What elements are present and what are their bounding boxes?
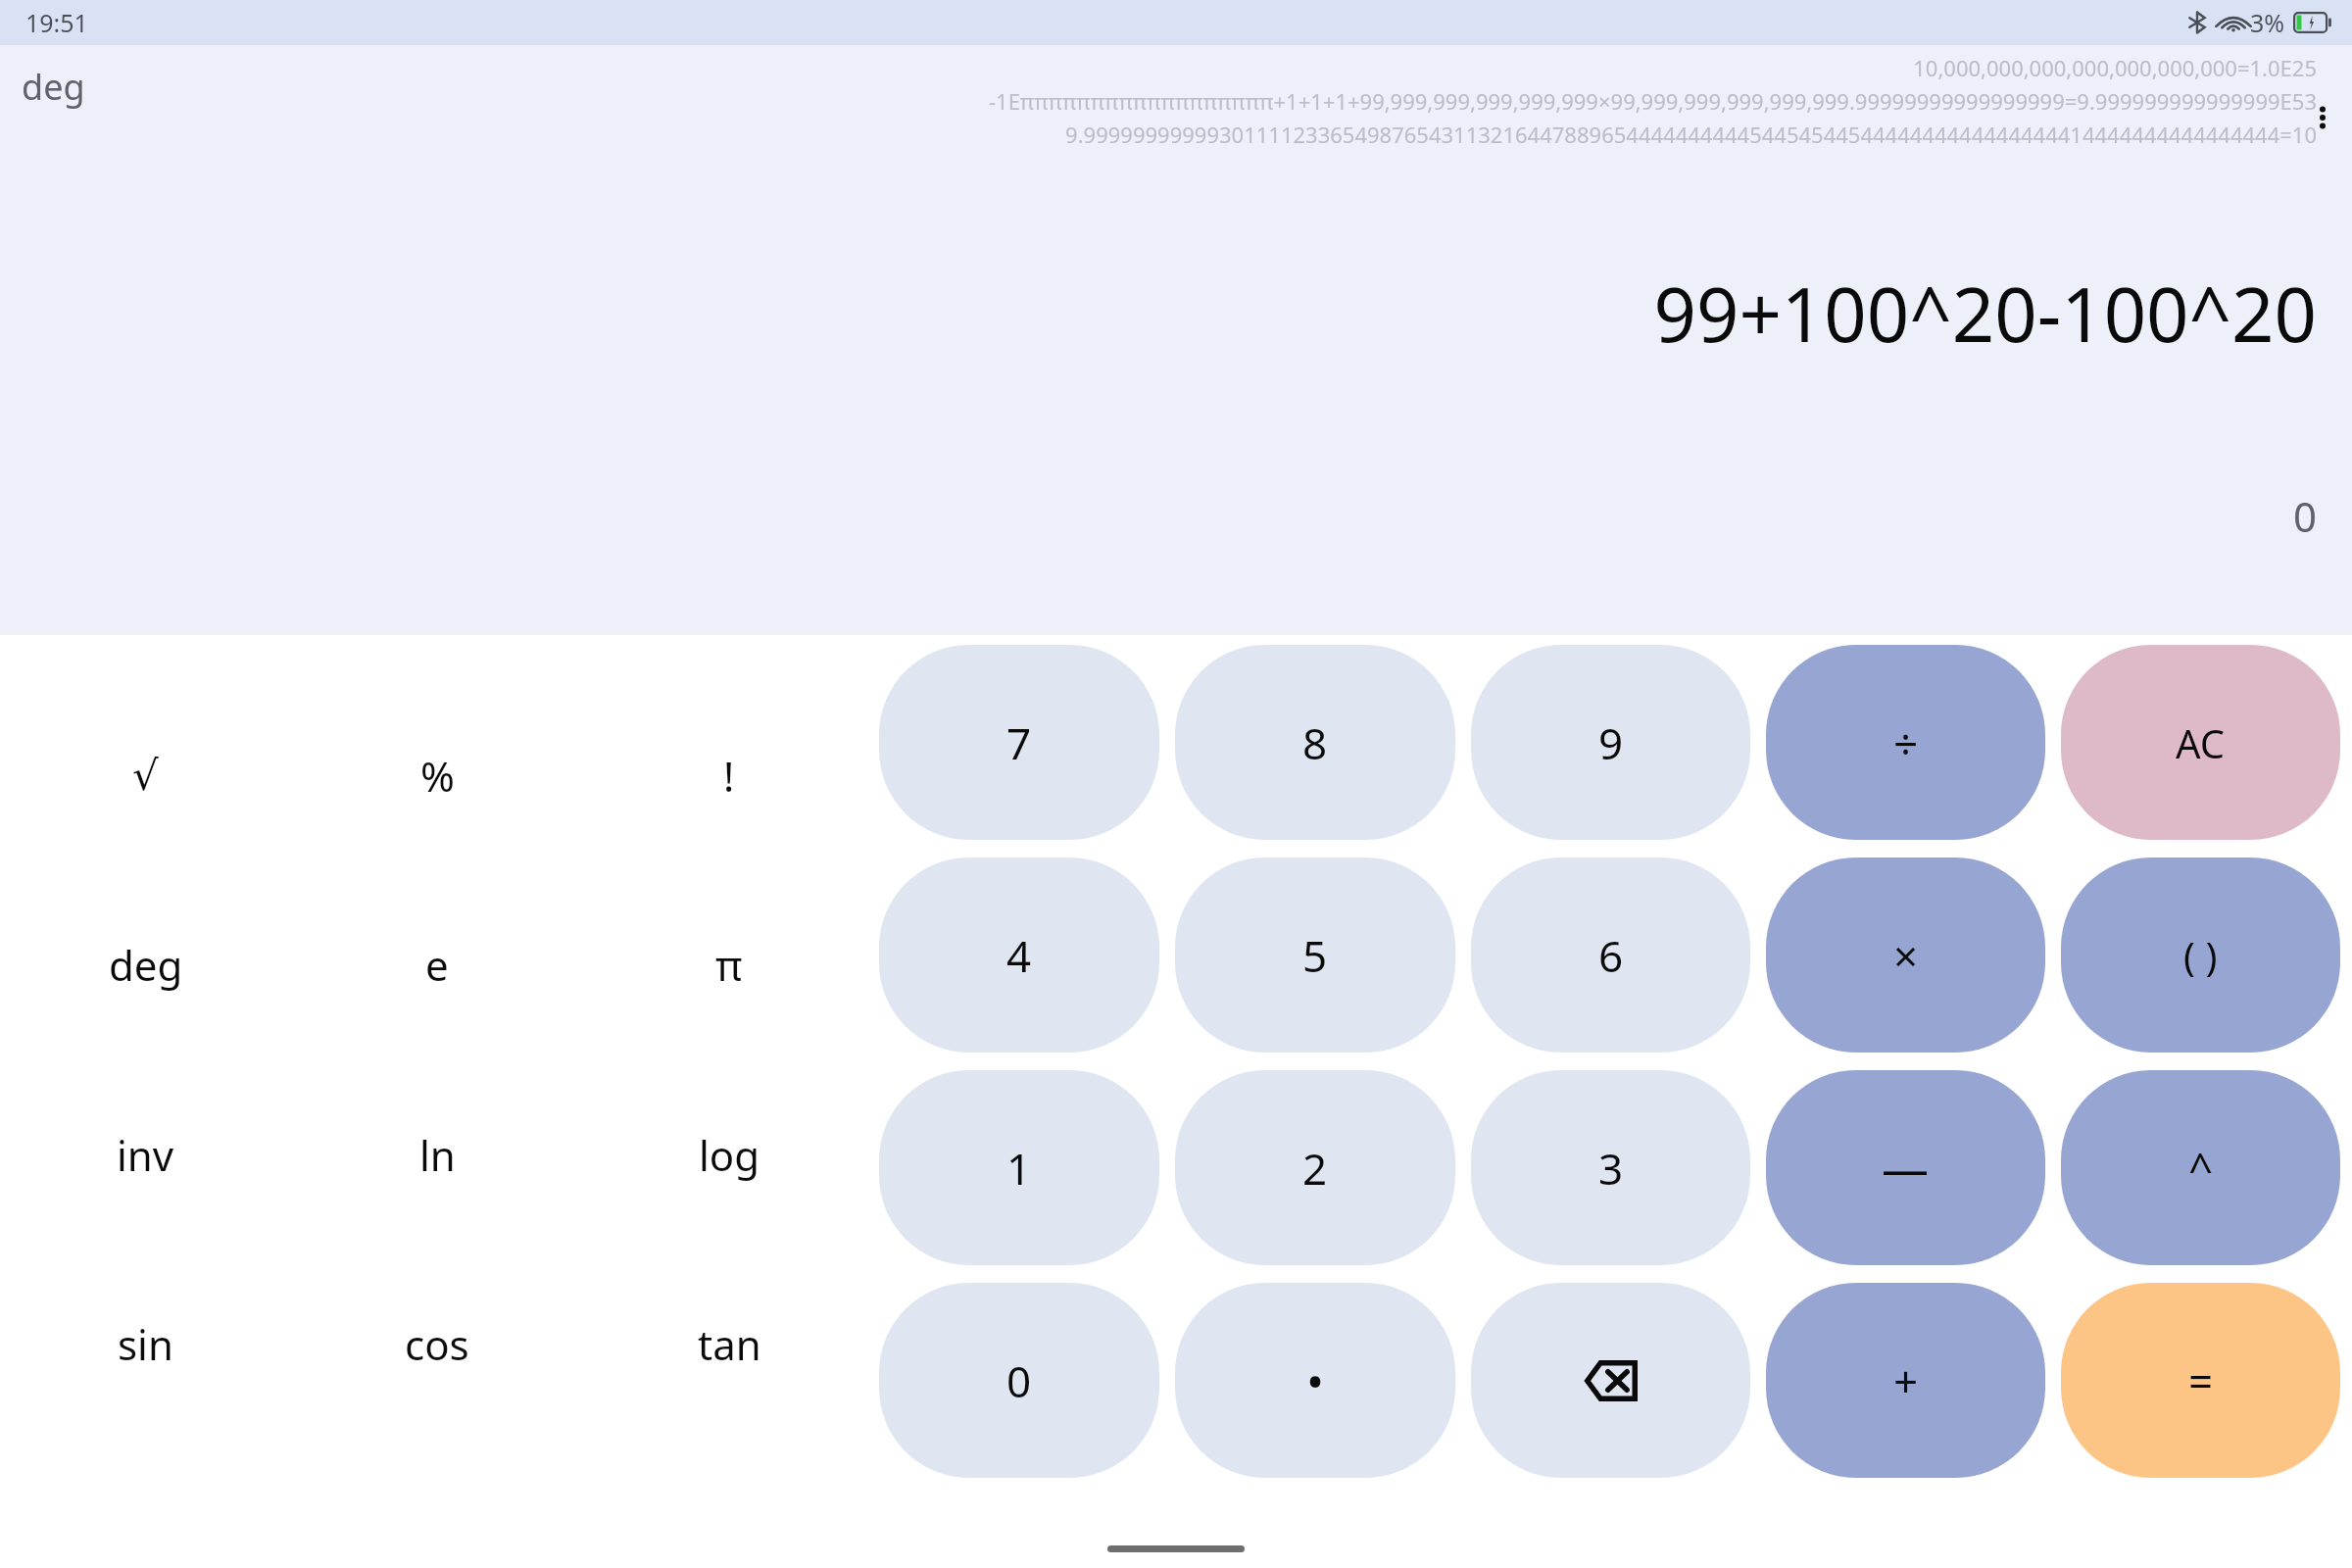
button[interactable]: =: [2061, 1283, 2340, 1478]
button[interactable]: cos: [291, 1285, 583, 1402]
button[interactable]: 6: [1471, 857, 1750, 1053]
staticText: ln: [419, 1127, 456, 1183]
button[interactable]: •: [1175, 1283, 1455, 1478]
button[interactable]: 4: [879, 857, 1159, 1053]
staticText: √: [132, 752, 159, 800]
staticText: ×: [1893, 926, 1919, 985]
staticText: 3%: [2250, 6, 2285, 39]
staticText: 9.99999999999301111233654987654311321644…: [1065, 120, 2317, 149]
button[interactable]: 9: [1471, 645, 1750, 840]
button[interactable]: 0: [879, 1283, 1159, 1478]
button[interactable]: inv: [0, 1096, 291, 1213]
button[interactable]: ÷: [1766, 645, 2045, 840]
button[interactable]: 1: [879, 1070, 1159, 1265]
button[interactable]: 7: [879, 645, 1159, 840]
staticText: 7: [1006, 713, 1032, 772]
staticText: sin: [118, 1316, 173, 1372]
button[interactable]: Backspace: [1471, 1283, 1750, 1478]
staticText: •: [1306, 1348, 1325, 1412]
staticText: 6: [1598, 926, 1624, 985]
button[interactable]: 2: [1175, 1070, 1455, 1265]
staticText: AC: [2176, 716, 2226, 769]
button[interactable]: log: [583, 1096, 875, 1213]
staticText: 4: [1006, 926, 1032, 985]
button[interactable]: ( ): [2061, 857, 2340, 1053]
staticText: deg: [22, 63, 85, 111]
staticText: ( ): [2183, 929, 2218, 982]
button[interactable]: π: [583, 906, 875, 1023]
button[interactable]: +: [1766, 1283, 2045, 1478]
staticText: 3: [1598, 1139, 1624, 1198]
staticText: %: [420, 748, 455, 804]
button[interactable]: √: [0, 716, 291, 834]
staticText: 99+100^20-100^20: [1653, 263, 2317, 365]
staticText: ^: [2188, 1139, 2214, 1198]
staticText: 10,000,000,000,000,000,000,000=1.0E25: [1913, 53, 2317, 82]
staticText: 1: [1006, 1139, 1032, 1198]
staticText: e: [425, 937, 449, 993]
staticText: deg: [109, 937, 183, 993]
button[interactable]: deg: [0, 906, 291, 1023]
staticText: 9: [1598, 713, 1624, 772]
staticText: inv: [117, 1127, 174, 1183]
staticText: +: [1893, 1351, 1919, 1410]
staticText: -1Eππππππππππππππππππ+1+1+1+99,999,999,9…: [988, 86, 2317, 116]
button[interactable]: AC: [2061, 645, 2340, 840]
button[interactable]: sin: [0, 1285, 291, 1402]
staticText: —: [1882, 1136, 1930, 1200]
button[interactable]: !: [583, 716, 875, 834]
button[interactable]: e: [291, 906, 583, 1023]
staticText: ÷: [1893, 713, 1919, 772]
button[interactable]: ×: [1766, 857, 2045, 1053]
staticText: 0: [2292, 488, 2317, 544]
button[interactable]: 3: [1471, 1070, 1750, 1265]
staticText: log: [699, 1127, 760, 1183]
button[interactable]: ln: [291, 1096, 583, 1213]
staticText: 8: [1302, 713, 1328, 772]
button[interactable]: 5: [1175, 857, 1455, 1053]
staticText: =: [2188, 1351, 2214, 1410]
button[interactable]: tan: [583, 1285, 875, 1402]
button[interactable]: ^: [2061, 1070, 2340, 1265]
button[interactable]: %: [291, 716, 583, 834]
staticText: 19:51: [25, 6, 88, 39]
staticText: π: [715, 937, 743, 993]
staticText: cos: [405, 1316, 469, 1372]
staticText: tan: [698, 1316, 761, 1372]
staticText: 5: [1302, 926, 1328, 985]
button[interactable]: —: [1766, 1070, 2045, 1265]
staticText: 0: [1006, 1351, 1032, 1410]
staticText: !: [723, 748, 735, 804]
button[interactable]: More options: [2297, 92, 2348, 143]
staticText: 2: [1302, 1139, 1328, 1198]
button[interactable]: 8: [1175, 645, 1455, 840]
